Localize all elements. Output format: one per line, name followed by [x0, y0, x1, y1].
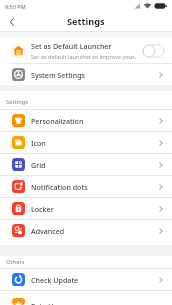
staticText: Locker — [31, 204, 54, 214]
button[interactable]: Locker — [0, 198, 172, 219]
staticText: Notification dots — [31, 182, 88, 192]
staticText: System Settings — [31, 70, 86, 80]
button[interactable] — [6, 16, 18, 28]
button[interactable]: Check Update — [0, 269, 172, 290]
staticText: 9:50 PM — [5, 3, 26, 10]
staticText: Settings — [6, 98, 29, 106]
button[interactable]: Rate Us — [0, 291, 172, 305]
button[interactable]: Notification dots — [0, 176, 172, 197]
staticText: Set as default launcher to improve your.… — [31, 53, 137, 61]
button[interactable]: Advanced — [0, 220, 172, 241]
staticText: Settings — [67, 15, 105, 28]
staticText: Advanced — [31, 226, 65, 236]
button[interactable]: System Settings — [0, 64, 172, 85]
button[interactable]: Set as Default Launcher — [0, 38, 172, 63]
staticText: Icon — [31, 138, 46, 148]
button[interactable]: Personalization — [0, 110, 172, 131]
staticText: Others — [6, 258, 25, 266]
staticText: Personalization — [31, 116, 84, 126]
button[interactable]: Icon — [0, 132, 172, 153]
staticText: Set as Default Launcher — [31, 41, 112, 51]
button[interactable]: Grid — [0, 154, 172, 175]
staticText: Rate Us — [31, 301, 57, 305]
staticText: Grid — [31, 160, 46, 170]
button[interactable] — [143, 45, 164, 57]
staticText: Check Update — [31, 275, 79, 285]
